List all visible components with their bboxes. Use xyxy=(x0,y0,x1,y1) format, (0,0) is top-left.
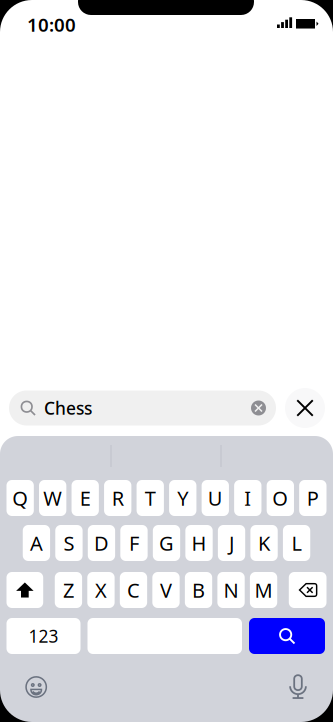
button[interactable]: M xyxy=(250,572,277,608)
button[interactable]: W xyxy=(39,480,66,516)
button[interactable]: Dictate xyxy=(276,667,320,707)
button[interactable]: X xyxy=(87,572,115,608)
button[interactable]: Shift xyxy=(6,572,43,608)
staticText: I xyxy=(244,485,251,511)
staticText: O xyxy=(272,485,288,511)
staticText: D xyxy=(94,530,109,556)
button[interactable]: R xyxy=(104,480,131,516)
staticText: F xyxy=(129,530,139,556)
button[interactable]: D xyxy=(88,525,115,561)
staticText: W xyxy=(43,485,62,511)
staticText: G xyxy=(159,530,174,556)
button[interactable]: F xyxy=(120,525,148,561)
staticText: V xyxy=(160,577,172,603)
button[interactable]: S xyxy=(55,525,83,561)
staticText: T xyxy=(145,485,156,511)
button[interactable]: L xyxy=(283,525,310,561)
button[interactable]: E xyxy=(71,480,99,516)
staticText: S xyxy=(63,530,74,556)
button[interactable]: P xyxy=(299,480,326,516)
staticText: R xyxy=(112,485,124,511)
staticText: M xyxy=(255,577,273,603)
staticText: Q xyxy=(12,485,28,511)
staticText: L xyxy=(292,530,302,556)
staticText: J xyxy=(229,530,234,556)
staticText: K xyxy=(258,530,270,556)
button[interactable]: O xyxy=(267,480,294,516)
button[interactable]: V xyxy=(152,572,180,608)
button[interactable]: 123 xyxy=(6,618,80,654)
staticText: 10:00 xyxy=(27,12,76,37)
staticText: H xyxy=(191,530,206,556)
button[interactable]: Emoji xyxy=(14,667,58,707)
button[interactable]: U xyxy=(202,480,229,516)
button[interactable]: J xyxy=(218,525,245,561)
staticText: B xyxy=(192,577,205,603)
button[interactable]: K xyxy=(250,525,278,561)
button[interactable]: H xyxy=(185,525,213,561)
staticText: Chess xyxy=(44,396,92,419)
button[interactable]: Q xyxy=(6,480,34,516)
button[interactable]: T xyxy=(137,480,164,516)
button[interactable]: A xyxy=(23,525,50,561)
staticText: P xyxy=(307,485,319,511)
staticText: U xyxy=(208,485,223,511)
button[interactable]: G xyxy=(153,525,180,561)
button[interactable]: N xyxy=(217,572,245,608)
button[interactable]: Y xyxy=(169,480,196,516)
staticText: X xyxy=(95,577,107,603)
button[interactable]: Delete xyxy=(289,572,326,608)
staticText: C xyxy=(127,577,140,603)
button[interactable]: C xyxy=(120,572,147,608)
staticText: 123 xyxy=(28,624,58,647)
staticText: N xyxy=(223,577,238,603)
staticText: Y xyxy=(177,485,188,511)
button[interactable]: Close search xyxy=(285,388,325,428)
staticText: E xyxy=(80,485,91,511)
staticText: Z xyxy=(63,577,74,603)
button[interactable]: Z xyxy=(55,572,82,608)
button[interactable]: Search xyxy=(249,618,325,654)
button[interactable]: I xyxy=(234,480,261,516)
staticText: A xyxy=(30,530,43,556)
button[interactable]: B xyxy=(185,572,212,608)
